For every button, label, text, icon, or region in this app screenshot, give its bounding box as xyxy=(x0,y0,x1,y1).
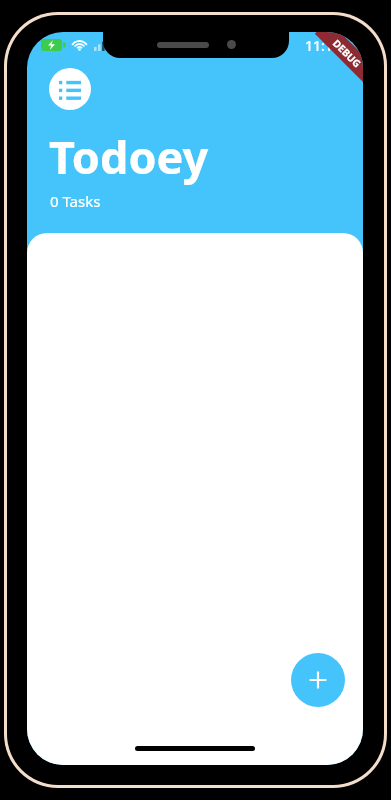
staticText: 11:16 xyxy=(305,36,341,55)
staticText: Todoey xyxy=(49,126,209,187)
staticText: 0 Tasks xyxy=(50,191,101,211)
staticText: DEBUG xyxy=(330,36,363,70)
button[interactable]: Categories list xyxy=(49,68,91,110)
button[interactable]: Add task xyxy=(291,653,345,707)
